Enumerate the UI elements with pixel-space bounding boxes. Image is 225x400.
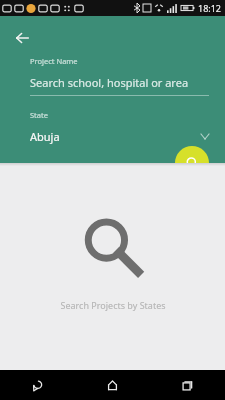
staticText: Search Projects by States [60,299,166,311]
button[interactable]: Recent apps [150,370,225,400]
staticText: 18:12 [198,2,222,14]
button[interactable]: Search school, hospital or area [30,75,209,90]
button[interactable]: Search [175,146,209,180]
staticText: Abuja [30,129,201,144]
button[interactable]: Back [8,24,36,52]
button[interactable]: Back [0,370,75,400]
button[interactable]: Abuja [30,129,209,144]
staticText: Search school, hospital or area [30,75,189,90]
staticText: State [30,110,48,120]
button[interactable]: Home [75,370,150,400]
staticText: Project Name [30,56,78,66]
